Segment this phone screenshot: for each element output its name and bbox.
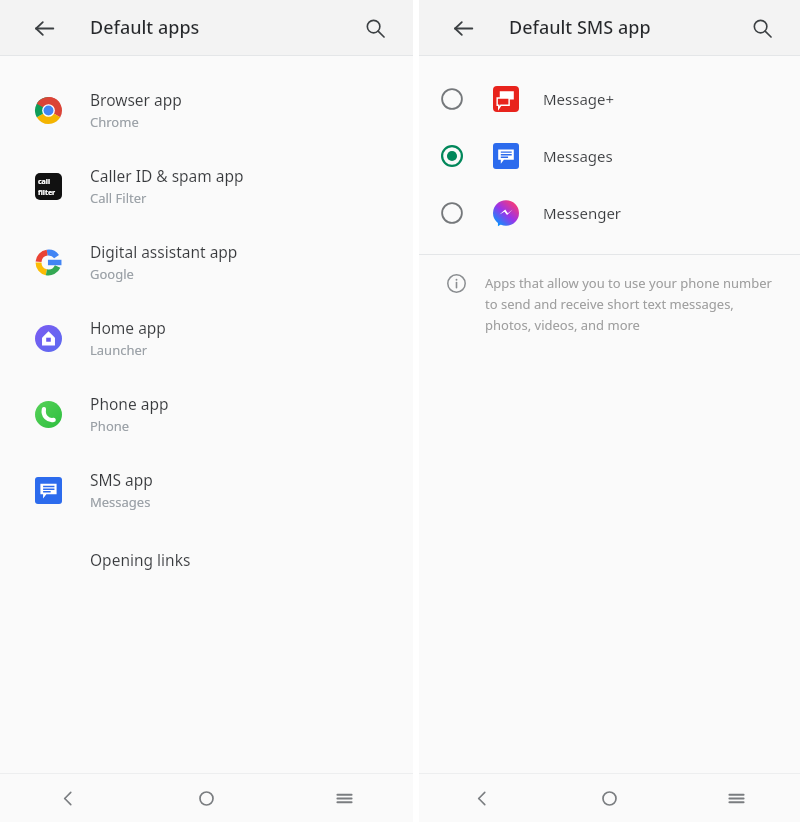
staticText: Messages [90, 493, 151, 511]
button[interactable]: Back [22, 6, 66, 50]
staticText: Caller ID & spam app [90, 165, 244, 186]
staticText: Home app [90, 317, 166, 338]
button[interactable]: Search [353, 6, 397, 50]
staticText: Apps that allow you to use your phone nu… [485, 274, 772, 292]
button[interactable]: Opening links [0, 528, 413, 590]
staticText: Google [90, 265, 134, 283]
button[interactable]: Recent apps [673, 774, 800, 822]
button[interactable]: Home [546, 774, 673, 822]
button[interactable]: Home [137, 774, 275, 822]
staticText: Browser app [90, 89, 182, 110]
button[interactable]: call [0, 148, 413, 224]
staticText: Messenger [543, 203, 622, 223]
staticText: Opening links [90, 549, 191, 570]
staticText: Message+ [543, 89, 615, 109]
staticText: Default apps [90, 15, 200, 40]
staticText: photos, videos, and more [485, 316, 640, 334]
staticText: to send and receive short text messages, [485, 295, 734, 313]
button[interactable]: Messenger [419, 184, 800, 241]
button[interactable]: SMS app [0, 452, 413, 528]
staticText: Messages [543, 146, 613, 166]
staticText: SMS app [90, 469, 153, 490]
staticText: filter [38, 188, 56, 198]
staticText: Launcher [90, 341, 148, 359]
button[interactable]: Back [0, 774, 137, 822]
staticText: Call Filter [90, 189, 147, 207]
staticText: Chrome [90, 113, 139, 131]
button[interactable]: Messages [419, 127, 800, 184]
button[interactable]: Browser app [0, 72, 413, 148]
button[interactable]: Back [419, 774, 546, 822]
button[interactable]: Back [441, 6, 485, 50]
button[interactable]: Search [740, 6, 784, 50]
staticText: Phone [90, 417, 130, 435]
button[interactable]: Recent apps [275, 774, 413, 822]
button[interactable]: Digital assistant app [0, 224, 413, 300]
staticText: Phone app [90, 393, 169, 414]
staticText: Default SMS app [509, 15, 651, 40]
staticText: Digital assistant app [90, 241, 238, 262]
button[interactable]: Message+ [419, 70, 800, 127]
button[interactable]: Home app [0, 300, 413, 376]
staticText: call [38, 177, 50, 187]
button[interactable]: Phone app [0, 376, 413, 452]
